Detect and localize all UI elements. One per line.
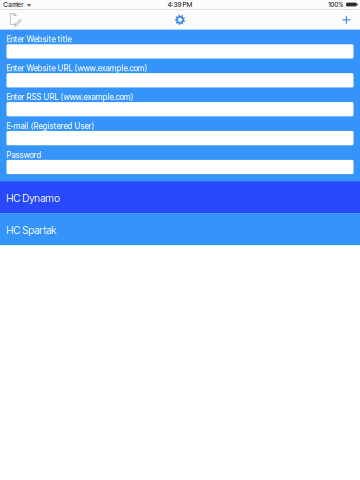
staticText: Enter RSS URL (www.example.com) (6, 92, 133, 102)
button[interactable]: HC Dynamo (0, 181, 360, 213)
staticText: Enter Website URL (www.example.com) (6, 63, 147, 73)
button[interactable]: Add (342, 16, 350, 24)
staticText: 4:39 PM (168, 0, 193, 9)
staticText: Password (6, 150, 41, 160)
button[interactable]: Settings (174, 14, 185, 25)
staticText: Enter Website title (6, 35, 71, 44)
button[interactable]: HC Spartak (0, 213, 360, 245)
staticText: HC Spartak (6, 224, 56, 237)
button[interactable]: Compose (10, 13, 22, 26)
staticText: 100% (328, 0, 343, 9)
staticText: E-mail (Registered User) (6, 121, 94, 131)
staticText: HC Dynamo (6, 192, 60, 205)
staticText: Carrier (3, 0, 23, 9)
